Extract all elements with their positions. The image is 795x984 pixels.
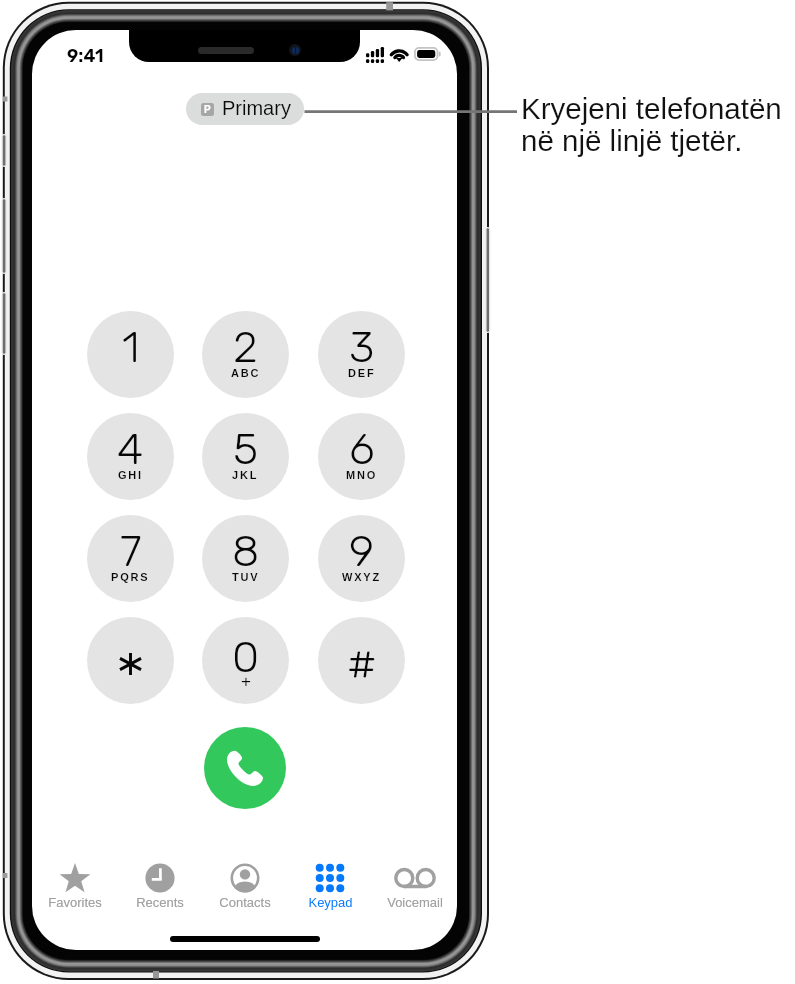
staticText: DEF: [348, 367, 376, 379]
staticText: TUV: [232, 571, 260, 583]
staticText: 4: [117, 423, 144, 475]
staticText: 3: [349, 321, 375, 373]
button[interactable]: Contacts: [203, 851, 287, 915]
staticText: MNO: [346, 469, 378, 481]
button[interactable]: 8: [202, 515, 289, 602]
staticText: 9:41: [67, 45, 104, 66]
button[interactable]: 4: [87, 413, 174, 500]
staticText: +: [241, 672, 251, 691]
staticText: #: [347, 640, 377, 690]
button[interactable]: Voicemail: [373, 851, 457, 915]
staticText: 8: [232, 525, 260, 577]
staticText: 1: [122, 321, 140, 373]
button[interactable]: [87, 617, 174, 704]
staticText: Favorites: [48, 895, 102, 910]
staticText: ABC: [231, 367, 261, 379]
button[interactable]: Call: [204, 727, 286, 809]
button[interactable]: 7: [87, 515, 174, 602]
staticText: 5: [233, 423, 259, 475]
staticText: 6: [349, 423, 375, 475]
button[interactable]: 9: [318, 515, 405, 602]
staticText: Kryejeni telefonatën në një linjë tjetër…: [521, 92, 782, 158]
button[interactable]: Keypad: [288, 851, 372, 915]
staticText: JKL: [232, 469, 259, 481]
staticText: Voicemail: [387, 895, 443, 910]
staticText: P: [204, 104, 211, 115]
staticText: GHI: [118, 469, 143, 481]
staticText: 0: [232, 631, 260, 683]
staticText: 2: [233, 321, 258, 373]
staticText: 9: [349, 525, 375, 577]
staticText: Keypad: [308, 895, 353, 910]
button[interactable]: 0: [202, 617, 289, 704]
staticText: PQRS: [111, 571, 150, 583]
staticText: Contacts: [219, 895, 271, 910]
button[interactable]: Favorites: [33, 851, 117, 915]
staticText: Primary: [222, 97, 291, 119]
staticText: 7: [120, 525, 142, 577]
staticText: Recents: [136, 895, 184, 910]
staticText: WXYZ: [342, 571, 381, 583]
button[interactable]: #: [318, 617, 405, 704]
button[interactable]: 5: [202, 413, 289, 500]
button[interactable]: P: [186, 93, 304, 125]
button[interactable]: 2: [202, 311, 289, 398]
button[interactable]: 1: [87, 311, 174, 398]
button[interactable]: 6: [318, 413, 405, 500]
button[interactable]: 3: [318, 311, 405, 398]
button[interactable]: Recents: [118, 851, 202, 915]
